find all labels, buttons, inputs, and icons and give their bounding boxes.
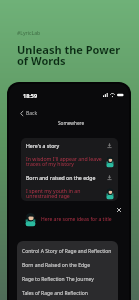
button[interactable]: Download: [105, 173, 114, 182]
staticText: Somewhere: [58, 120, 85, 126]
button[interactable]: Control A Story of Rage and Reflection: [17, 244, 118, 258]
staticText: #LyricLab: [17, 30, 41, 37]
button[interactable]: Born and Raised on the Edge: [17, 258, 118, 272]
staticText: Born and raised on the edge: [26, 174, 103, 181]
button[interactable]: Close: [114, 205, 124, 215]
staticText: 18:59: [23, 92, 38, 99]
staticText: Tales of Rage and Reflection: [22, 290, 88, 297]
staticText: Rage to Reflection The Journey: [22, 276, 94, 283]
button[interactable]: Tales of Rage and Reflection: [17, 286, 118, 300]
staticText: Here's a story: [26, 142, 103, 149]
staticText: I spent my youth in an unrestrained rage: [26, 187, 104, 200]
staticText: Control A Story of Rage and Reflection: [22, 248, 112, 255]
button[interactable]: Back: [20, 110, 38, 117]
staticText: Unleash the Power of Words: [17, 42, 121, 69]
staticText: In wisdom I'll appear and leave traces o…: [26, 155, 104, 168]
staticText: Here are some ideas for a title: [41, 216, 112, 223]
button[interactable]: Rage to Reflection The Journey: [17, 272, 118, 286]
button[interactable]: Download: [105, 141, 114, 150]
staticText: Back: [26, 110, 38, 117]
staticText: Born and Raised on the Edge: [22, 262, 90, 269]
